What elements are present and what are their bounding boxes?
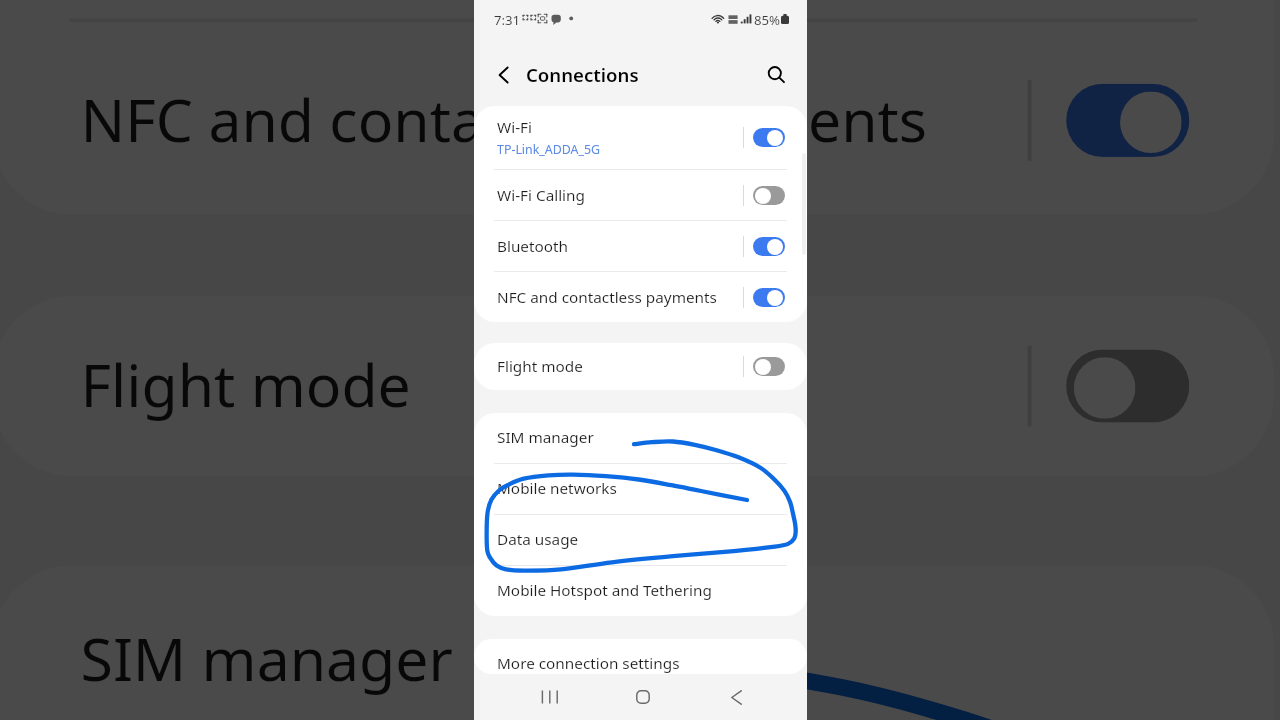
staticText: NFC and contactless payments [80, 80, 927, 161]
staticText: Wi-Fi [497, 117, 532, 138]
button[interactable]: Turn on [753, 357, 785, 376]
button[interactable]: Turn off [753, 237, 785, 256]
staticText: NFC and contactless payments [497, 287, 717, 308]
button[interactable]: Bluetooth [474, 221, 807, 272]
staticText: Flight mode [80, 346, 412, 426]
button[interactable]: Back [717, 683, 755, 711]
button[interactable]: Turn on [1066, 349, 1189, 423]
staticText: Mobile networks [497, 478, 617, 499]
button[interactable]: Back [491, 62, 517, 88]
button[interactable]: Turn off [753, 128, 785, 147]
staticText: More connection settings [497, 653, 680, 674]
staticText: TP-Link_ADDA_5G [497, 141, 601, 158]
staticText: SIM manager [497, 427, 594, 448]
button[interactable]: Bluetooth [0, 0, 1274, 22]
staticText: Wi-Fi Calling [497, 185, 585, 206]
button[interactable]: NFC and contactless payments [474, 272, 807, 322]
button[interactable]: Home [624, 683, 662, 711]
staticText: Bluetooth [497, 236, 568, 257]
staticText: Mobile Hotspot and Tethering [497, 580, 712, 601]
button[interactable]: More connection settings [474, 639, 807, 674]
staticText: 7:31 [494, 11, 521, 29]
staticText: Flight mode [497, 356, 583, 377]
button[interactable]: Turn on [753, 186, 785, 205]
button[interactable]: Mobile Hotspot and Tethering [474, 566, 807, 616]
button[interactable]: Recent apps [531, 683, 569, 711]
button[interactable]: SIM manager [474, 413, 807, 464]
button[interactable]: SIM manager [0, 565, 1274, 720]
staticText: Connections [526, 62, 639, 87]
button[interactable]: Flight mode [0, 295, 1274, 476]
button[interactable]: NFC and contactless payments [0, 22, 1274, 215]
button[interactable]: Turn off [753, 288, 785, 307]
staticText: 85% [754, 11, 781, 29]
button[interactable]: Turn off [1066, 84, 1189, 157]
button[interactable]: Wi-Fi Calling [474, 170, 807, 221]
staticText: Data usage [497, 529, 579, 550]
button[interactable]: Wi-Fi [474, 106, 807, 170]
button[interactable]: Flight mode [474, 343, 807, 390]
staticText: SIM manager [80, 619, 454, 700]
button[interactable]: Search [758, 61, 784, 87]
button[interactable]: Data usage [474, 515, 807, 566]
button[interactable]: Mobile networks [474, 464, 807, 515]
